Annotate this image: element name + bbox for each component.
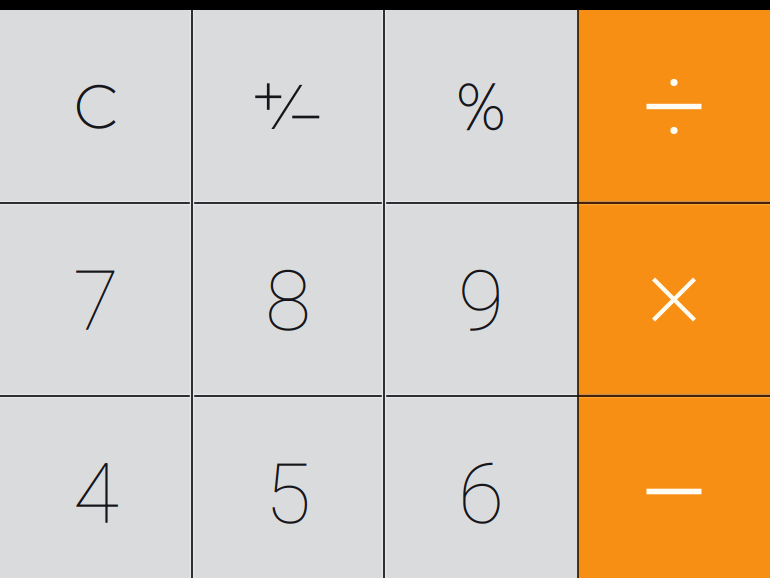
staticText: 5 [265, 445, 311, 543]
button[interactable]: 6 [384, 396, 578, 578]
staticText: 9 [458, 252, 504, 350]
button[interactable]: Clear [0, 10, 192, 203]
button[interactable]: Divide [578, 10, 770, 203]
button[interactable]: Percent [384, 10, 578, 203]
button[interactable]: 4 [0, 396, 192, 578]
button[interactable]: Minus [578, 396, 770, 578]
button[interactable]: 8 [192, 203, 384, 396]
button[interactable]: Multiply [578, 203, 770, 396]
button[interactable]: Plus minus [192, 10, 384, 203]
staticText: 7 [73, 252, 119, 350]
button[interactable]: 9 [384, 203, 578, 396]
button[interactable]: 7 [0, 203, 192, 396]
staticText: 4 [73, 445, 119, 543]
staticText: % [457, 62, 505, 151]
button[interactable]: 5 [192, 396, 384, 578]
staticText: 6 [458, 445, 504, 543]
staticText: 8 [265, 252, 311, 350]
staticText: C [74, 66, 118, 147]
